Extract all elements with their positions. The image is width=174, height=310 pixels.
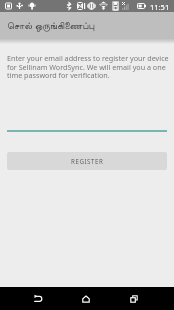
staticText: 11:51 <box>150 2 170 12</box>
button[interactable]: Home <box>70 287 102 310</box>
staticText: REGISTER <box>71 157 104 165</box>
button[interactable]: Recent apps <box>118 287 150 310</box>
staticText: Enter your email address to register you… <box>7 53 169 80</box>
button[interactable]: REGISTER <box>7 152 167 170</box>
button[interactable]: Back <box>22 287 54 310</box>
staticText: சொல் ஒருங்கிணைப்பு <box>7 19 95 32</box>
